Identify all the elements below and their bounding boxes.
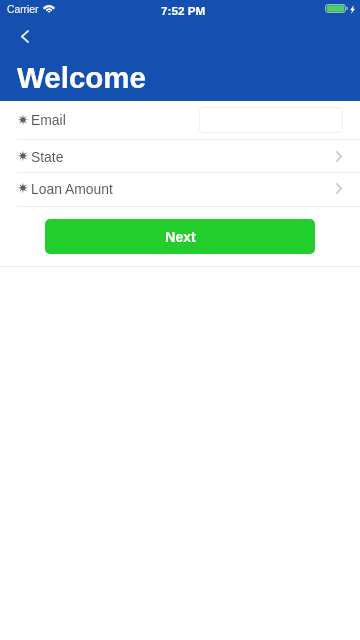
staticText: ✷ <box>17 112 29 129</box>
staticText: Welcome <box>17 61 146 94</box>
staticText: ✷ <box>17 148 29 165</box>
button[interactable]: ✷ <box>0 140 360 172</box>
staticText: Next <box>165 229 196 245</box>
button[interactable]: Next <box>45 219 315 254</box>
staticText: ✷ <box>17 180 29 197</box>
staticText: Loan Amount <box>31 181 113 197</box>
button[interactable]: Back <box>4 20 44 52</box>
staticText: State <box>31 149 64 165</box>
staticText: 7:52 PM <box>161 4 206 17</box>
staticText: Carrier <box>7 4 39 16</box>
button[interactable]: ✷ <box>0 101 360 139</box>
button[interactable]: ✷ <box>0 173 360 206</box>
staticText: Email <box>31 112 66 128</box>
